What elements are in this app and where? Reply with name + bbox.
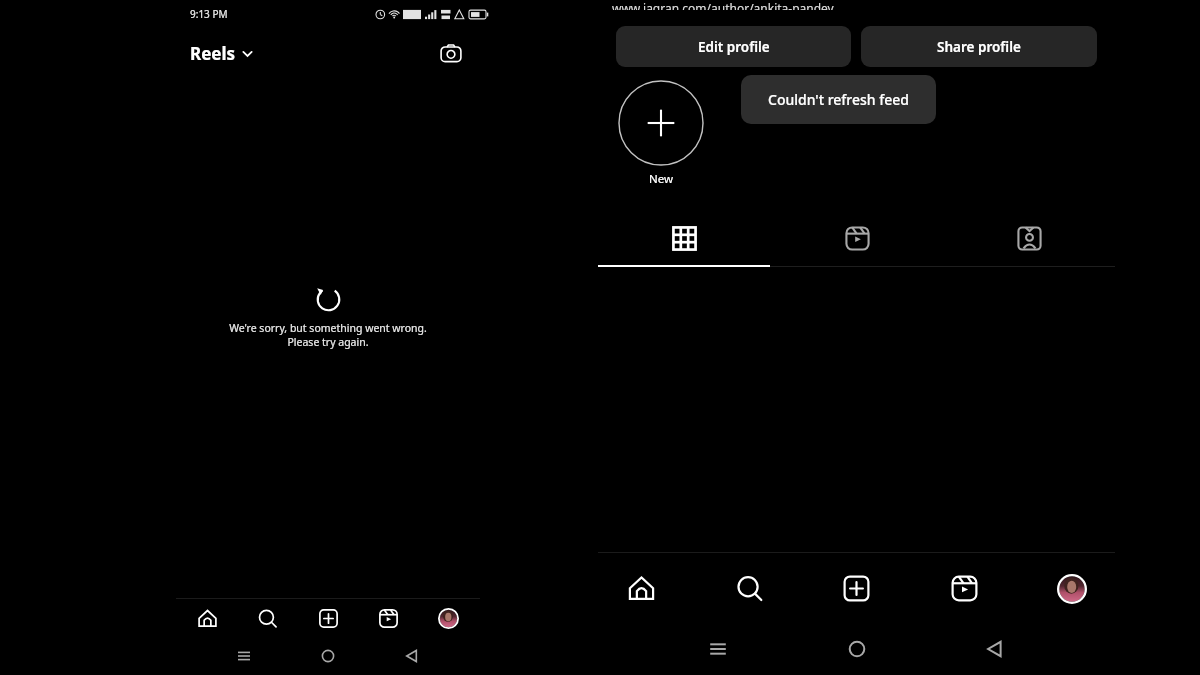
button[interactable]: Recent apps: [699, 630, 737, 668]
button[interactable]: Reels: [371, 601, 406, 636]
staticText: New: [649, 171, 674, 187]
staticText: Couldn't refresh feed: [768, 90, 909, 109]
staticText: 9:13 PM: [190, 7, 228, 21]
button[interactable]: Create new post: [835, 567, 878, 610]
button[interactable]: Tagged photos: [943, 209, 1115, 267]
button[interactable]: Camera: [434, 36, 468, 70]
staticText: Reels: [190, 42, 236, 65]
button[interactable]: Reels: [943, 567, 986, 610]
button[interactable]: Search: [728, 567, 771, 610]
staticText: Share profile: [937, 38, 1021, 56]
button[interactable]: Create new post: [311, 601, 346, 636]
button[interactable]: Add new story: [618, 80, 704, 166]
button[interactable]: Back: [396, 640, 428, 672]
button[interactable]: Edit profile: [616, 26, 851, 67]
button[interactable]: Search: [250, 601, 285, 636]
staticText: We're sorry, but something went wrong. P…: [229, 321, 427, 349]
button[interactable]: Profile: [1050, 567, 1093, 610]
button[interactable]: Back: [976, 630, 1014, 668]
button[interactable]: Home: [620, 567, 663, 610]
button[interactable]: Profile: [431, 601, 466, 636]
button[interactable]: Home: [190, 601, 225, 636]
button[interactable]: Home: [838, 630, 876, 668]
button[interactable]: Recent apps: [228, 640, 260, 672]
button[interactable]: Reels: [188, 38, 255, 69]
button[interactable]: Share profile: [861, 26, 1097, 67]
staticText: Edit profile: [698, 38, 770, 56]
button[interactable]: Couldn't refresh feed: [741, 75, 936, 124]
button[interactable]: Home: [312, 640, 344, 672]
button[interactable]: Reels tab: [771, 209, 943, 267]
button[interactable]: Posts grid: [598, 209, 771, 267]
staticText: www.jagran.com/author/ankita-pandey: [612, 0, 834, 10]
